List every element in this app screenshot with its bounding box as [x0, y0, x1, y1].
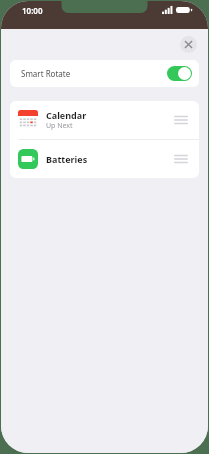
button[interactable]: Calendar — [10, 101, 199, 139]
button[interactable]: Reorder Calendar — [174, 113, 188, 127]
staticText: Up Next — [46, 121, 73, 131]
button[interactable]: Smart Rotate — [10, 60, 199, 87]
button[interactable]: Smart Rotate toggle — [167, 66, 192, 81]
button[interactable]: Close — [180, 36, 197, 53]
button[interactable]: Batteries — [10, 140, 199, 178]
staticText: Calendar — [46, 109, 87, 121]
button[interactable]: Reorder Batteries — [174, 152, 188, 166]
staticText: Batteries — [46, 153, 88, 165]
staticText: 10:00 — [22, 5, 43, 16]
staticText: Smart Rotate — [21, 68, 71, 79]
